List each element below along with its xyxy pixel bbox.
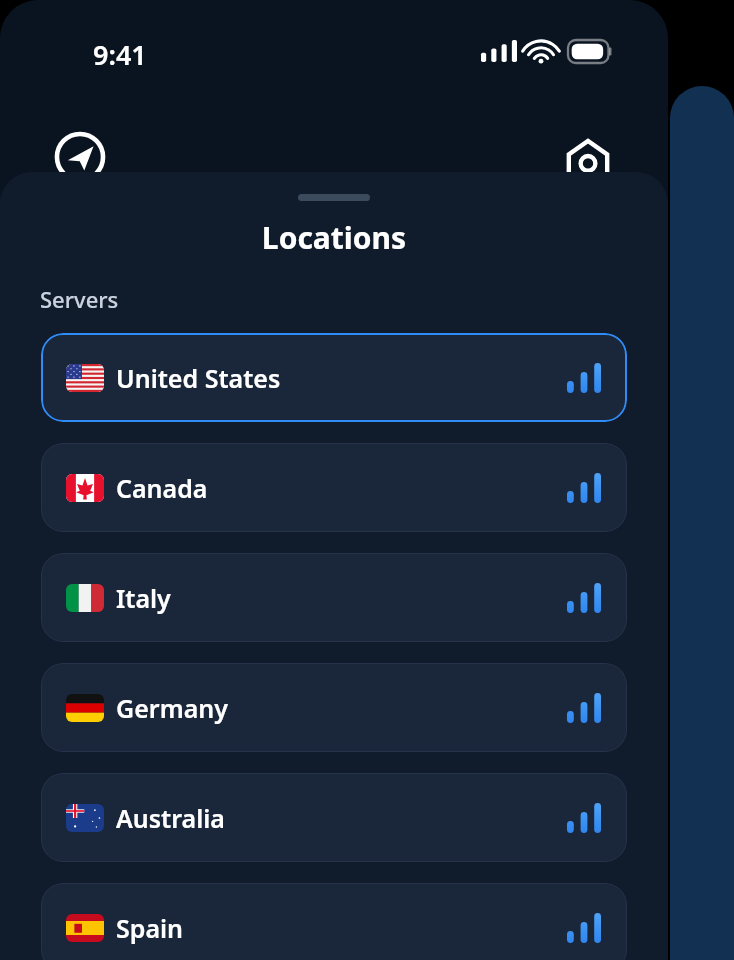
button[interactable]: Germany xyxy=(41,663,627,752)
staticText: Spain xyxy=(116,911,184,945)
staticText: Italy xyxy=(116,581,171,615)
button[interactable]: United States xyxy=(41,333,627,422)
button[interactable]: Spain xyxy=(41,883,627,960)
staticText: Australia xyxy=(116,801,225,835)
staticText: 9:41 xyxy=(93,36,147,73)
button[interactable]: Canada xyxy=(41,443,627,532)
staticText: United States xyxy=(116,361,281,395)
button[interactable]: Navigate xyxy=(48,125,112,189)
staticText: Servers xyxy=(40,284,119,314)
staticText: Germany xyxy=(116,691,228,725)
button[interactable]: Italy xyxy=(41,553,627,642)
staticText: Locations xyxy=(0,217,668,258)
button[interactable]: Australia xyxy=(41,773,627,862)
staticText: Canada xyxy=(116,471,208,505)
button[interactable]: Home xyxy=(556,125,620,189)
